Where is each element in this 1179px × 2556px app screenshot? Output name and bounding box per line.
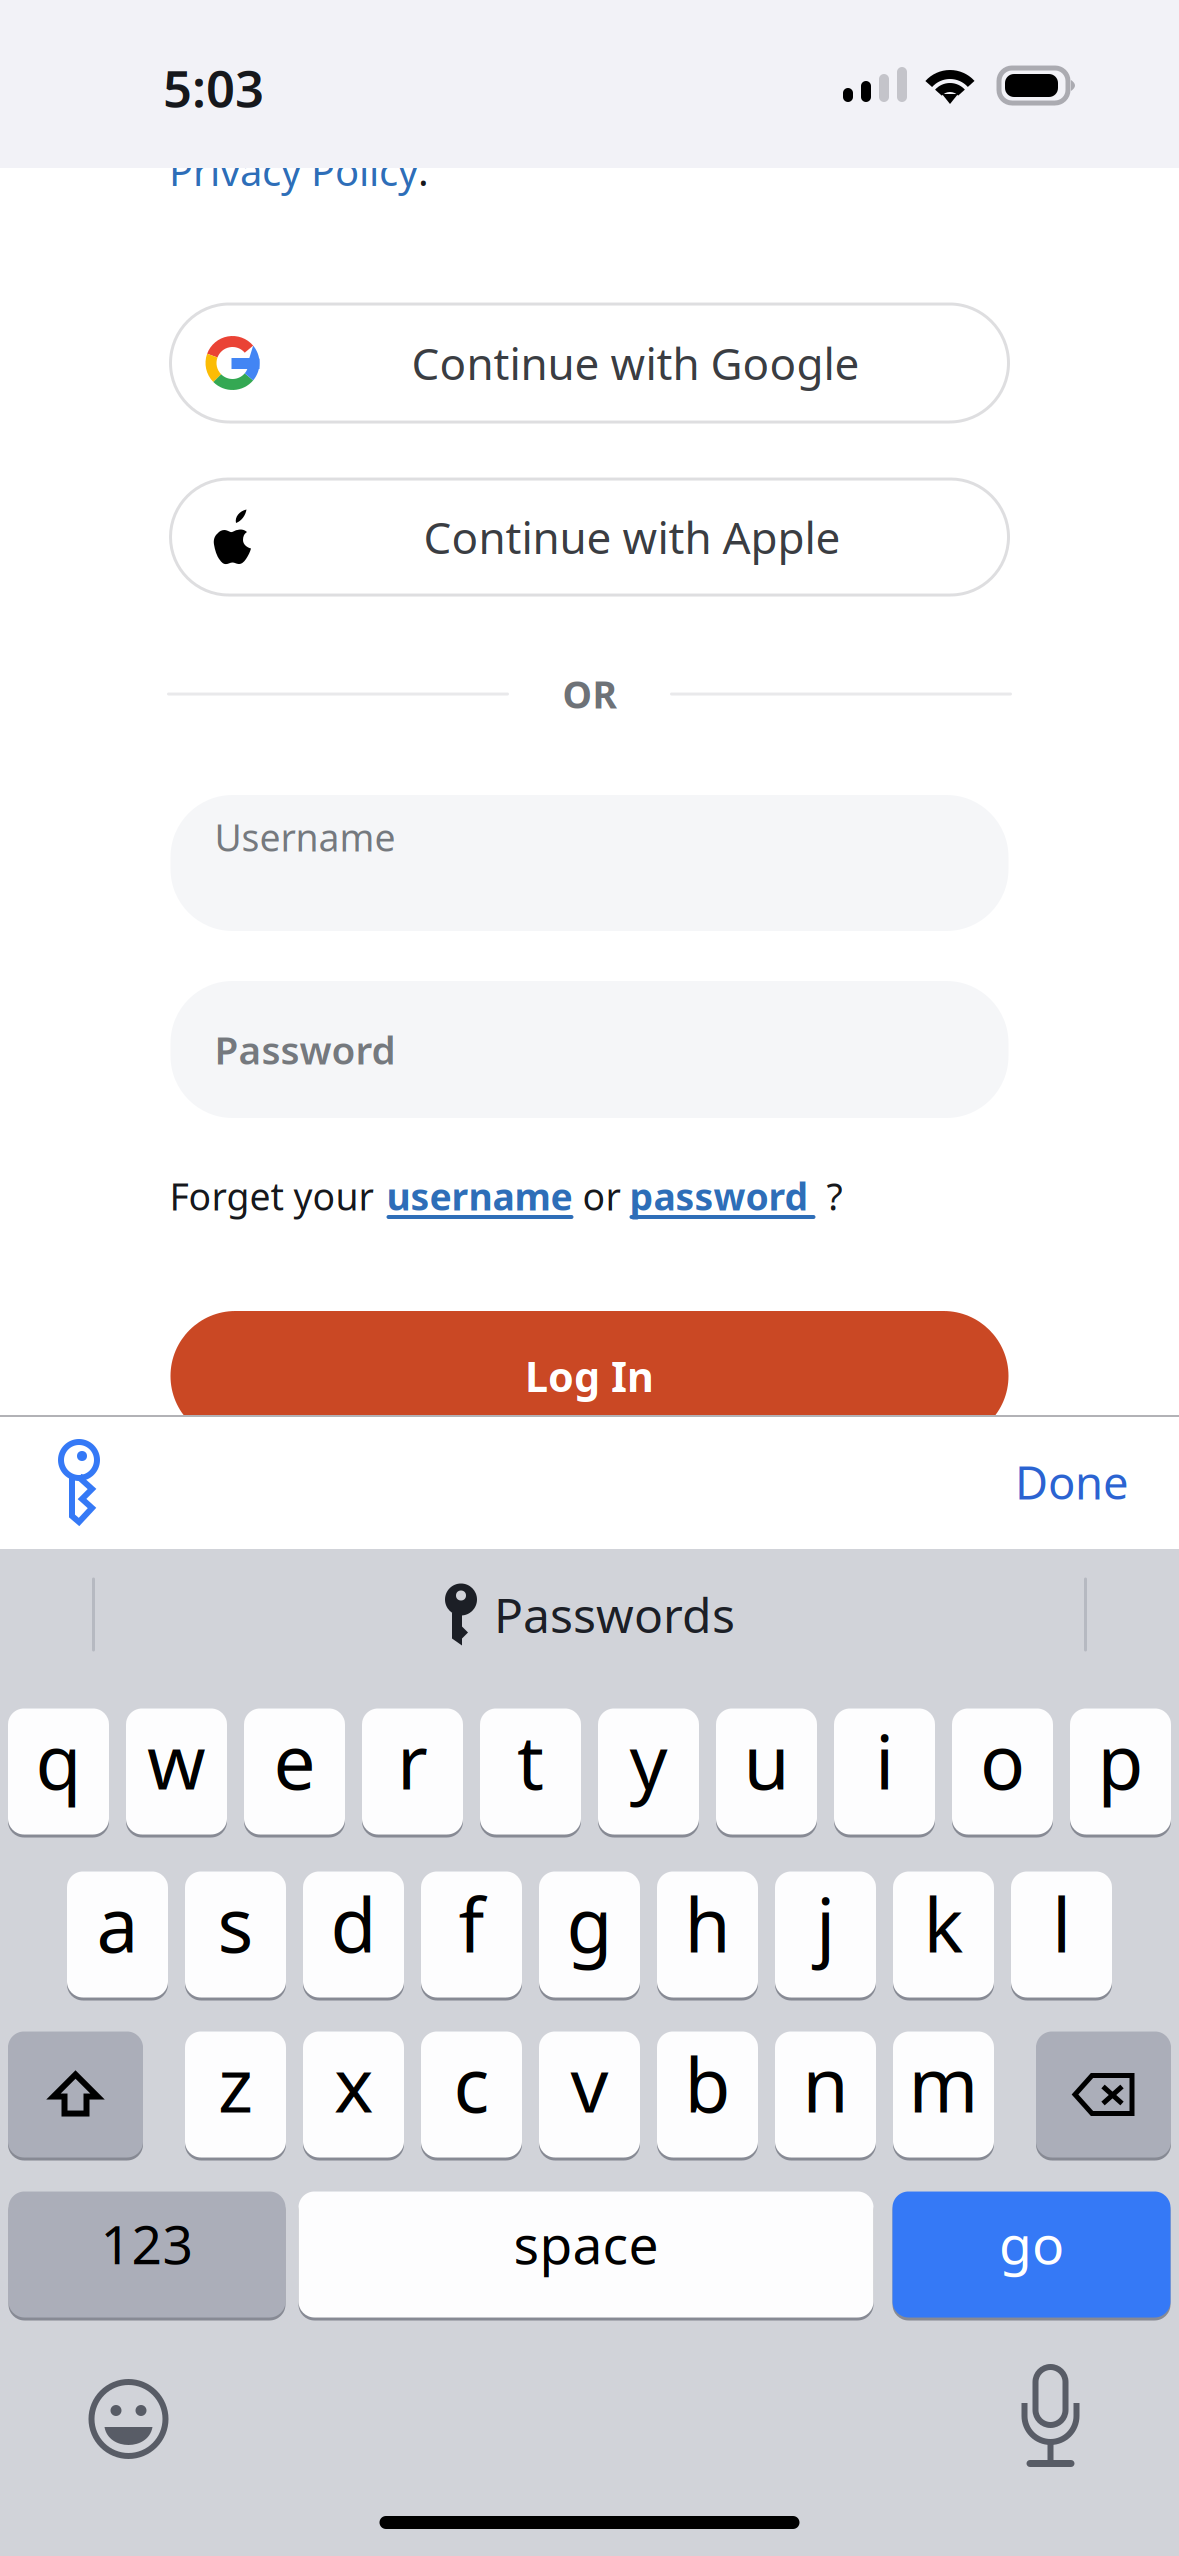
staticText: d bbox=[330, 1874, 376, 1973]
button[interactable]: Shift bbox=[8, 2030, 143, 2159]
staticText: . bbox=[418, 144, 429, 197]
staticText: OR bbox=[562, 669, 616, 719]
button[interactable]: a bbox=[67, 1870, 168, 1999]
staticText: o bbox=[980, 1711, 1025, 1810]
button[interactable]: u bbox=[716, 1707, 817, 1836]
staticText: j bbox=[816, 1874, 835, 1973]
staticText: 5:03 bbox=[163, 54, 264, 121]
staticText: k bbox=[923, 1874, 963, 1973]
button[interactable]: Continue with Apple bbox=[170, 479, 1008, 595]
button[interactable]: h bbox=[657, 1870, 758, 1999]
staticText: Log In bbox=[525, 1349, 654, 1403]
button[interactable]: Emoji bbox=[73, 2361, 183, 2477]
staticText: Continue with Apple bbox=[423, 508, 840, 566]
staticText: Privacy Policy bbox=[169, 144, 418, 197]
button[interactable]: username bbox=[386, 1168, 573, 1224]
staticText: z bbox=[218, 2034, 253, 2133]
staticText: g bbox=[566, 1874, 612, 1973]
button[interactable]: l bbox=[1011, 1870, 1112, 1999]
button[interactable]: b bbox=[657, 2030, 758, 2159]
staticText: p bbox=[1097, 1711, 1143, 1810]
button[interactable]: w bbox=[126, 1707, 227, 1836]
button[interactable]: z bbox=[185, 2030, 286, 2159]
button[interactable]: space bbox=[298, 2190, 873, 2319]
staticText: e bbox=[273, 1711, 315, 1810]
staticText: x bbox=[334, 2034, 373, 2133]
button[interactable]: password bbox=[629, 1168, 815, 1224]
staticText: Done bbox=[1015, 1452, 1129, 1512]
staticText: space bbox=[513, 2208, 658, 2279]
staticText: n bbox=[802, 2034, 848, 2133]
staticText: Forget your bbox=[169, 1171, 373, 1221]
button[interactable]: o bbox=[952, 1707, 1053, 1836]
staticText: c bbox=[453, 2034, 489, 2133]
button[interactable]: y bbox=[598, 1707, 699, 1836]
button[interactable]: 123 bbox=[8, 2190, 285, 2319]
button[interactable]: t bbox=[480, 1707, 581, 1836]
staticText: Passwords bbox=[494, 1583, 735, 1646]
staticText: f bbox=[458, 1874, 484, 1973]
button[interactable]: k bbox=[893, 1870, 994, 1999]
staticText: i bbox=[875, 1711, 894, 1810]
button[interactable]: m bbox=[893, 2030, 994, 2159]
staticText: t bbox=[517, 1711, 544, 1810]
button[interactable]: i bbox=[834, 1707, 935, 1836]
button[interactable]: x bbox=[303, 2030, 404, 2159]
button[interactable]: p bbox=[1070, 1707, 1171, 1836]
staticText: s bbox=[217, 1874, 253, 1973]
button[interactable]: v bbox=[539, 2030, 640, 2159]
staticText: 123 bbox=[100, 2208, 193, 2279]
staticText: m bbox=[908, 2034, 978, 2133]
button[interactable]: j bbox=[775, 1870, 876, 1999]
button[interactable]: Done bbox=[1015, 1415, 1129, 1549]
button[interactable]: Privacy Policy bbox=[169, 168, 418, 221]
button[interactable]: s bbox=[185, 1870, 286, 1999]
staticText: u bbox=[743, 1711, 789, 1810]
staticText: or bbox=[582, 1171, 620, 1221]
button[interactable]: Log In bbox=[170, 1311, 1008, 1441]
staticText: username bbox=[386, 1171, 572, 1221]
staticText: password bbox=[629, 1171, 808, 1221]
button[interactable]: Passwords bbox=[444, 1564, 735, 1664]
button[interactable]: d bbox=[303, 1870, 404, 1999]
staticText: h bbox=[684, 1874, 730, 1973]
staticText: q bbox=[35, 1711, 81, 1810]
staticText: v bbox=[570, 2034, 608, 2133]
button[interactable]: c bbox=[421, 2030, 522, 2159]
staticText: l bbox=[1052, 1874, 1071, 1973]
button[interactable]: f bbox=[421, 1870, 522, 1999]
button[interactable]: Continue with Google bbox=[170, 304, 1008, 422]
staticText: y bbox=[629, 1711, 667, 1810]
button[interactable]: q bbox=[8, 1707, 109, 1836]
staticText: w bbox=[147, 1711, 206, 1810]
staticText: ? bbox=[826, 1171, 842, 1221]
staticText: a bbox=[96, 1874, 138, 1973]
button[interactable]: Dictation bbox=[995, 2361, 1105, 2477]
staticText: r bbox=[397, 1711, 428, 1810]
button[interactable]: n bbox=[775, 2030, 876, 2159]
staticText: Continue with Google bbox=[411, 334, 859, 392]
button[interactable]: Delete bbox=[1036, 2030, 1171, 2159]
button[interactable]: go bbox=[892, 2190, 1170, 2319]
button[interactable]: Passwords bbox=[35, 1415, 125, 1549]
staticText: b bbox=[684, 2034, 730, 2133]
button[interactable]: g bbox=[539, 1870, 640, 1999]
staticText: Username bbox=[214, 812, 395, 862]
button[interactable]: e bbox=[244, 1707, 345, 1836]
button[interactable]: r bbox=[362, 1707, 463, 1836]
staticText: go bbox=[999, 2208, 1064, 2279]
staticText: Password bbox=[214, 1024, 395, 1075]
